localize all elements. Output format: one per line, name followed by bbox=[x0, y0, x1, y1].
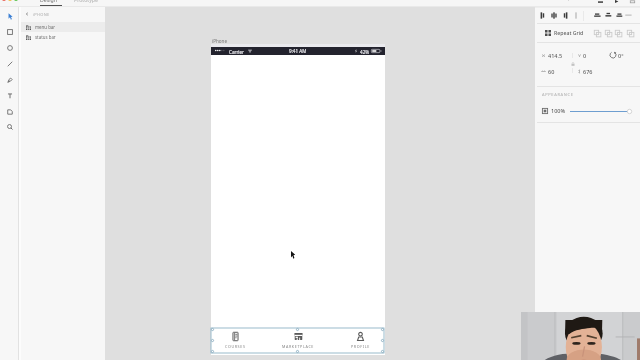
button[interactable]: Align horizontally bbox=[560, 10, 570, 20]
staticText: menu bar bbox=[35, 24, 56, 30]
button[interactable]: Boolean operation bbox=[603, 28, 613, 38]
button[interactable]: Zoom bbox=[4, 121, 16, 133]
button[interactable]: Design bbox=[39, 0, 58, 3]
staticText: 0° bbox=[618, 52, 624, 59]
button[interactable]: Artboard bbox=[4, 106, 16, 118]
button[interactable]: Prototype bbox=[73, 0, 99, 3]
staticText: MARKETPLACE bbox=[282, 344, 315, 349]
button[interactable]: Boolean operation bbox=[613, 28, 623, 38]
button[interactable]: Opacity slider bbox=[568, 106, 634, 116]
button[interactable]: Ellipse bbox=[4, 42, 16, 54]
staticText: 42% bbox=[360, 49, 370, 55]
button[interactable]: Repeat Grid bbox=[535, 25, 640, 40]
staticText: Carrier bbox=[229, 49, 244, 55]
button[interactable]: iPHONE bbox=[21, 9, 105, 19]
staticText: Design bbox=[40, 0, 57, 3]
staticText: status bar bbox=[35, 34, 56, 40]
staticText: COURSES bbox=[225, 344, 246, 349]
staticText: Repeat Grid bbox=[554, 29, 584, 36]
button[interactable]: Boolean operation bbox=[625, 28, 635, 38]
button[interactable]: Distribute bbox=[592, 10, 602, 20]
button[interactable]: Boolean operation bbox=[592, 28, 602, 38]
button[interactable]: COURSES bbox=[213, 328, 257, 353]
staticText: 414.5 bbox=[548, 52, 563, 59]
staticText: 100% bbox=[551, 107, 566, 114]
staticText: APPEARANCE bbox=[542, 92, 574, 97]
button[interactable]: Pen bbox=[4, 74, 16, 86]
button[interactable]: Align horizontally bbox=[538, 10, 548, 20]
staticText: 0 bbox=[583, 52, 587, 59]
staticText: Upload bbox=[565, 0, 580, 2]
button[interactable]: Toggle panels bbox=[629, 0, 636, 3]
staticText: PROFILE bbox=[351, 344, 370, 349]
button[interactable]: PROFILE bbox=[338, 328, 382, 353]
staticText: 60 bbox=[548, 68, 555, 75]
staticText: iPhone bbox=[212, 38, 228, 44]
button[interactable]: Preview bbox=[613, 0, 620, 3]
button[interactable]: Align horizontally bbox=[571, 10, 581, 20]
button[interactable]: Rectangle bbox=[4, 26, 16, 38]
button[interactable]: Align horizontally bbox=[549, 10, 559, 20]
button[interactable]: Distribute bbox=[623, 10, 633, 20]
button[interactable]: Share bbox=[597, 0, 604, 3]
button[interactable]: MARKETPLACE bbox=[276, 328, 320, 353]
button[interactable]: Distribute bbox=[603, 10, 613, 20]
button[interactable]: menu bar bbox=[21, 22, 105, 32]
staticText: Prototype bbox=[74, 0, 98, 3]
staticText: iPHONE bbox=[33, 12, 50, 17]
staticText: 676 bbox=[583, 68, 593, 75]
staticText: 9:41 AM bbox=[289, 48, 307, 54]
button[interactable]: Select bbox=[4, 10, 16, 22]
button[interactable]: Line bbox=[4, 58, 16, 70]
button[interactable]: Distribute bbox=[614, 10, 624, 20]
button[interactable]: Text bbox=[4, 90, 16, 102]
button[interactable]: status bar bbox=[21, 32, 105, 42]
